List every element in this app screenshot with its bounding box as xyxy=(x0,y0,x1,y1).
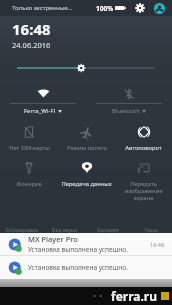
button[interactable]: MX Player Pro xyxy=(0,233,172,255)
staticText: Bluetooth xyxy=(112,107,140,115)
button[interactable]: Airplane mode xyxy=(58,122,115,152)
staticText: 16:48 xyxy=(12,19,51,39)
staticText: 16:48 xyxy=(150,241,165,248)
button[interactable]: Settings xyxy=(133,1,147,15)
staticText: Установка выполнена успешно. xyxy=(28,263,128,272)
button[interactable]: No SIM card xyxy=(0,122,58,152)
staticText: Установка выполнена успешно. xyxy=(28,245,128,254)
staticText: Блокировка xyxy=(6,226,38,233)
button[interactable]: Wi-Fi xyxy=(0,84,86,115)
staticText: Ferra_Wi-Fi xyxy=(24,107,56,115)
button[interactable]: Установка выполнена успешно. xyxy=(0,256,172,278)
staticText: ferra.ru xyxy=(111,288,158,304)
button[interactable]: Cast screen xyxy=(115,158,172,202)
staticText: 24.06.2016 xyxy=(12,40,51,50)
staticText: Передача данных xyxy=(61,180,112,188)
staticText: Без звука xyxy=(52,226,77,233)
staticText: Нет SIM-карты xyxy=(9,144,50,152)
button[interactable]: Bluetooth xyxy=(86,84,172,115)
button[interactable]: User profile xyxy=(152,1,166,15)
staticText: Батарея xyxy=(97,226,119,233)
button[interactable]: Brightness xyxy=(0,60,172,76)
staticText: Передать изображение экрана xyxy=(117,180,170,202)
staticText: 100% xyxy=(96,4,114,13)
staticText: Автоповорот xyxy=(125,144,162,152)
staticText: Только экстренные… xyxy=(12,4,73,12)
staticText: Режим полета xyxy=(67,144,107,152)
button[interactable]: Location xyxy=(58,158,115,188)
staticText: MX Player Pro xyxy=(28,234,78,244)
staticText: Часы xyxy=(144,226,158,233)
staticText: Фонарик xyxy=(16,180,42,188)
button[interactable]: Auto rotate xyxy=(115,122,172,152)
button[interactable]: Flashlight xyxy=(0,158,58,188)
